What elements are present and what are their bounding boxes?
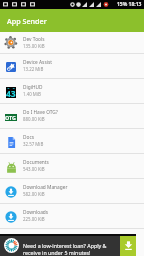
- button[interactable]: Install: [120, 234, 136, 256]
- staticText: Need a low-interest loan? Apply & receiv…: [23, 242, 107, 256]
- button[interactable]: 43: [0, 79, 144, 104]
- staticText: Downloads: [23, 209, 49, 216]
- button[interactable]: Need a low-interest loan? Apply & receiv…: [0, 234, 120, 256]
- staticText: Dev Tools: [23, 36, 45, 43]
- staticText: Download Manager: [23, 184, 68, 191]
- staticText: 32.57 MiB: [23, 141, 44, 147]
- staticText: Documents: [23, 159, 49, 166]
- staticText: OTG?: [5, 114, 17, 121]
- staticText: 543.00 KiB: [23, 166, 45, 172]
- staticText: 43: [6, 88, 16, 99]
- staticText: Do I Have OTG?: [23, 109, 58, 116]
- button[interactable]: Documents: [0, 154, 144, 179]
- staticText: App Sender: [7, 16, 47, 26]
- staticText: 135.00 KiB: [23, 43, 45, 49]
- button[interactable]: Dev Tools: [0, 32, 144, 54]
- staticText: 13.22 MiB: [23, 66, 44, 72]
- button[interactable]: Device Assist: [0, 54, 144, 79]
- button[interactable]: Docs: [0, 129, 144, 154]
- staticText: 225.00 KiB: [23, 216, 45, 222]
- staticText: DigiHUD: [23, 84, 43, 91]
- button[interactable]: OTG?: [0, 104, 144, 129]
- staticText: 1.40 MiB: [23, 91, 41, 97]
- staticText: 582.00 KiB: [23, 191, 45, 197]
- staticText: Device Assist: [23, 59, 52, 66]
- staticText: 15% 18:13: [117, 1, 142, 8]
- button[interactable]: Downloads: [0, 204, 144, 229]
- staticText: 880.00 KiB: [23, 116, 45, 122]
- staticText: Docs: [23, 134, 35, 141]
- button[interactable]: Download Manager: [0, 179, 144, 204]
